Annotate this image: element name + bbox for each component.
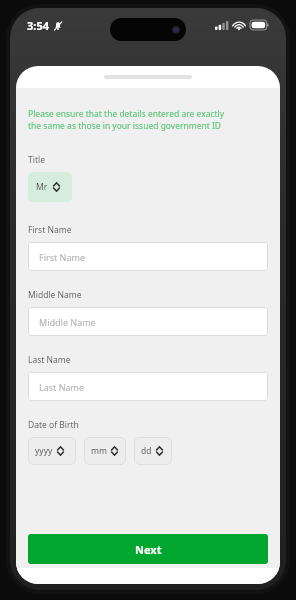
staticText: Last Name — [28, 354, 71, 366]
staticText: Mr — [36, 181, 48, 193]
staticText: First Name — [28, 224, 72, 236]
other: Select — [53, 182, 60, 192]
staticText: Please ensure that the details entered a… — [28, 108, 225, 132]
button[interactable]: Next — [28, 534, 268, 564]
button[interactable]: Middle Name — [28, 307, 268, 336]
button[interactable]: mm — [84, 437, 126, 465]
staticText: 3:54 — [27, 18, 49, 33]
staticText: dd — [141, 445, 152, 457]
staticText: Next — [135, 542, 162, 557]
staticText: Title — [28, 154, 45, 166]
button[interactable]: dd — [134, 437, 172, 465]
other: Select — [57, 446, 64, 456]
button[interactable]: Mr — [28, 172, 72, 202]
staticText: yyyy — [35, 445, 53, 457]
staticText: Middle Name — [39, 316, 96, 328]
staticText: mm — [91, 445, 107, 457]
staticText: Middle Name — [28, 289, 82, 301]
other: Select — [111, 446, 118, 456]
other: Select — [156, 446, 163, 456]
staticText: First Name — [39, 251, 85, 263]
button[interactable]: yyyy — [28, 437, 76, 465]
staticText: Date of Birth — [28, 419, 79, 431]
button[interactable]: First Name — [28, 242, 268, 271]
button[interactable]: Last Name — [28, 372, 268, 401]
staticText: Last Name — [39, 381, 85, 393]
